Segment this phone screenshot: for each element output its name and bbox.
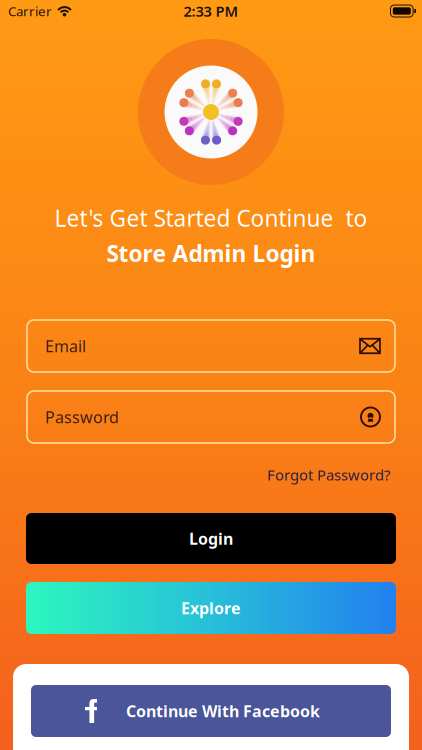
staticText: Password: [45, 406, 119, 428]
button[interactable]: Email: [27, 320, 395, 372]
button[interactable]: Login: [26, 513, 396, 564]
staticText: Explore: [181, 597, 241, 619]
staticText: Carrier: [8, 2, 52, 20]
button[interactable]: Continue With Facebook: [31, 685, 391, 737]
staticText: Let's Get Started Continue to: [54, 203, 367, 233]
button[interactable]: Explore: [26, 582, 396, 634]
staticText: 2:33 PM: [183, 1, 238, 21]
button[interactable]: Password: [27, 391, 395, 443]
staticText: Store Admin Login: [106, 238, 315, 268]
button[interactable]: Forgot Password?: [267, 465, 390, 484]
staticText: Login: [189, 528, 233, 549]
staticText: Forgot Password?: [267, 465, 390, 484]
staticText: Email: [45, 335, 86, 357]
staticText: Continue With Facebook: [126, 700, 320, 722]
